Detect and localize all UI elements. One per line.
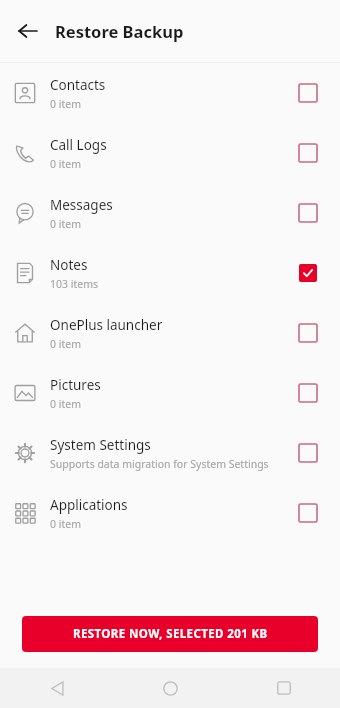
staticText: Notes	[50, 256, 88, 274]
staticText: OnePlus launcher	[50, 316, 163, 334]
button[interactable]: Applications	[0, 483, 340, 543]
staticText: Contacts	[50, 76, 106, 94]
button[interactable]: Back	[0, 668, 114, 708]
button[interactable]: Recent apps	[227, 668, 340, 708]
button[interactable]: Contacts checkbox	[292, 77, 324, 109]
button[interactable]: RESTORE NOW, SELECTED 201 KB	[22, 616, 318, 652]
staticText: RESTORE NOW, SELECTED 201 KB	[73, 626, 268, 642]
staticText: 0 item	[50, 517, 81, 531]
staticText: Messages	[50, 196, 113, 214]
staticText: Applications	[50, 496, 128, 514]
button[interactable]: Applications checkbox	[292, 497, 324, 529]
button[interactable]: OnePlus launcher	[0, 303, 340, 363]
button[interactable]: Call Logs checkbox	[292, 137, 324, 169]
button[interactable]: Contacts	[0, 63, 340, 123]
staticText: Supports data migration for System Setti…	[50, 457, 269, 471]
button[interactable]: System Settings	[0, 423, 340, 483]
button[interactable]: System Settings checkbox	[292, 437, 324, 469]
staticText: 0 item	[50, 217, 81, 231]
staticText: Restore Backup	[55, 20, 184, 42]
button[interactable]: Back	[6, 9, 50, 53]
button[interactable]: Notes checkbox	[292, 257, 324, 289]
staticText: 103 items	[50, 277, 99, 291]
button[interactable]: Messages checkbox	[292, 197, 324, 229]
staticText: 0 item	[50, 157, 81, 171]
staticText: Call Logs	[50, 136, 107, 154]
staticText: 0 item	[50, 337, 81, 351]
button[interactable]: OnePlus launcher checkbox	[292, 317, 324, 349]
button[interactable]: Pictures checkbox	[292, 377, 324, 409]
button[interactable]: Messages	[0, 183, 340, 243]
button[interactable]: Pictures	[0, 363, 340, 423]
button[interactable]: Home	[114, 668, 227, 708]
button[interactable]: Call Logs	[0, 123, 340, 183]
staticText: 0 item	[50, 397, 81, 411]
staticText: 0 item	[50, 97, 81, 111]
staticText: System Settings	[50, 436, 151, 454]
staticText: Pictures	[50, 376, 101, 394]
button[interactable]: Notes	[0, 243, 340, 303]
